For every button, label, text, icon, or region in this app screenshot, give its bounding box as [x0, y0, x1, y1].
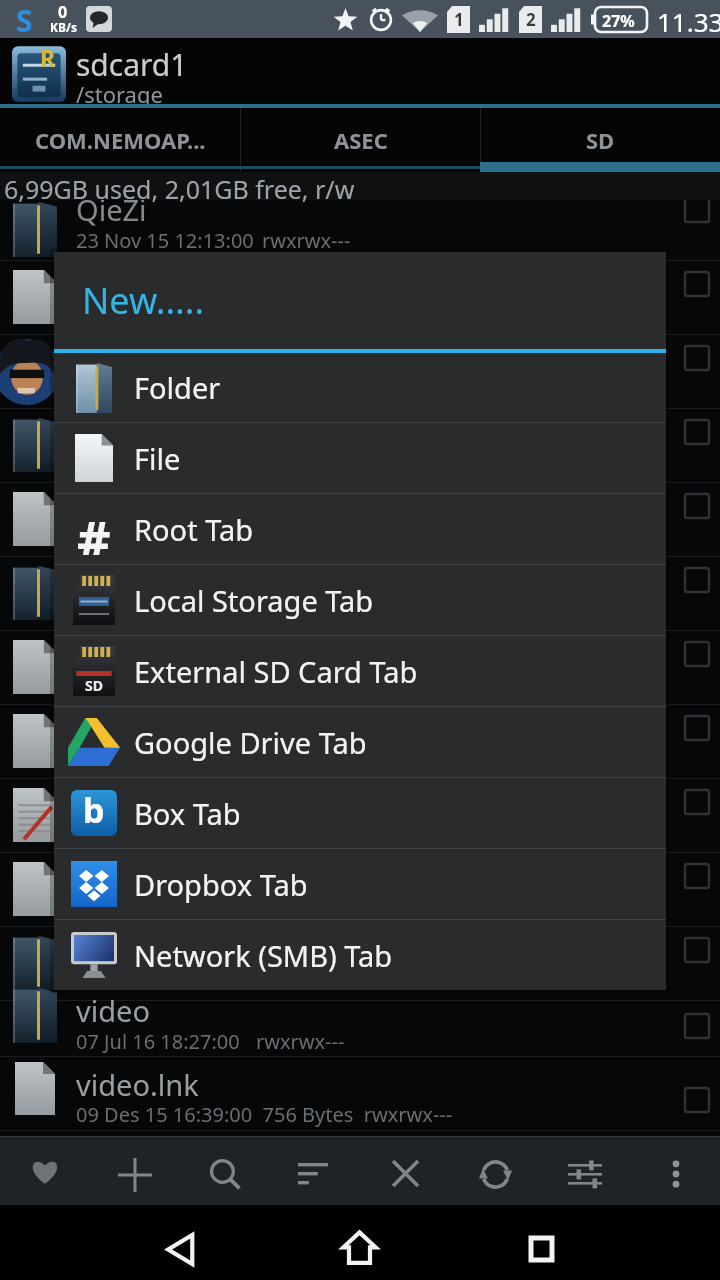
button[interactable]: Google Drive Tab: [54, 707, 666, 777]
staticText: b: [83, 787, 105, 833]
button[interactable]: [209, 1158, 241, 1190]
button[interactable]: b: [54, 778, 666, 848]
button[interactable]: [684, 1013, 710, 1039]
staticText: video: [76, 991, 150, 1030]
staticText: Folder: [134, 368, 221, 407]
button[interactable]: [684, 789, 710, 815]
button[interactable]: [298, 1161, 328, 1187]
button[interactable]: [684, 345, 710, 371]
staticText: 6,99GB used, 2,01GB free, r/w: [4, 172, 355, 206]
staticText: ASEC: [334, 125, 388, 155]
staticText: Dropbox Tab: [134, 865, 308, 904]
staticText: 09 Des 15 16:39:00 756 Bytes rwxrwx---: [76, 1101, 453, 1128]
staticText: /storage: [76, 79, 163, 109]
staticText: 2: [526, 8, 536, 31]
staticText: Network (SMB) Tab: [134, 936, 393, 975]
button[interactable]: [684, 641, 710, 667]
staticText: 0: [58, 1, 68, 23]
button[interactable]: [165, 1233, 196, 1266]
button[interactable]: [684, 567, 710, 593]
staticText: 27%: [602, 10, 635, 32]
button[interactable]: Folder: [54, 353, 666, 422]
staticText: File: [134, 439, 181, 478]
staticText: S: [16, 0, 33, 38]
staticText: Google Drive Tab: [134, 723, 367, 762]
button[interactable]: [684, 493, 710, 519]
button[interactable]: [684, 863, 710, 889]
button[interactable]: [342, 1231, 377, 1265]
staticText: sdcard1: [76, 44, 188, 85]
staticText: KB/s: [50, 19, 77, 35]
staticText: Local Storage Tab: [134, 581, 374, 620]
staticText: External SD Card Tab: [134, 652, 418, 691]
button[interactable]: Network (SMB) Tab: [54, 920, 666, 990]
staticText: Box Tab: [134, 794, 241, 833]
staticText: 23 Nov 15 12:13:00: [76, 227, 254, 254]
staticText: QieZi: [76, 190, 147, 229]
button[interactable]: [684, 271, 710, 297]
staticText: video.lnk: [76, 1065, 199, 1104]
button[interactable]: [684, 1087, 710, 1113]
button[interactable]: [528, 1235, 555, 1263]
staticText: 1: [454, 8, 464, 31]
button[interactable]: [568, 1160, 602, 1189]
button[interactable]: [31, 1158, 59, 1186]
staticText: SD: [586, 125, 615, 155]
button[interactable]: SD: [481, 108, 720, 172]
staticText: New.....: [82, 276, 205, 325]
button[interactable]: #: [54, 494, 666, 564]
button[interactable]: [684, 937, 710, 963]
button[interactable]: File: [54, 423, 666, 493]
button[interactable]: [684, 419, 710, 445]
staticText: R: [40, 42, 56, 73]
button[interactable]: [118, 1158, 152, 1192]
button[interactable]: [0, 981, 720, 1056]
staticText: SD: [85, 676, 103, 695]
button[interactable]: [0, 1056, 720, 1130]
button[interactable]: [391, 1159, 420, 1188]
button[interactable]: Dropbox Tab: [54, 849, 666, 919]
staticText: rwxrwx---: [256, 1028, 345, 1055]
staticText: #: [77, 503, 111, 555]
button[interactable]: [684, 197, 710, 223]
button[interactable]: [684, 715, 710, 741]
button[interactable]: [669, 1159, 683, 1189]
button[interactable]: ASEC: [241, 108, 480, 172]
staticText: rwxrwx---: [262, 227, 351, 254]
staticText: 11.33: [657, 4, 720, 39]
staticText: COM.NEMOAP...: [35, 125, 206, 155]
button[interactable]: SD: [54, 636, 666, 706]
staticText: Root Tab: [134, 510, 254, 549]
button[interactable]: [479, 1158, 512, 1191]
button[interactable]: COM.NEMOAP...: [0, 108, 240, 172]
button[interactable]: Local Storage Tab: [54, 565, 666, 635]
button[interactable]: [0, 186, 720, 260]
staticText: 07 Jul 16 18:27:00: [76, 1028, 240, 1055]
